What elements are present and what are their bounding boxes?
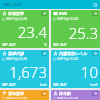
staticText: 基礎代謝 bbox=[8, 51, 41, 56]
staticText: 体脂肪率 bbox=[8, 11, 41, 16]
staticText: HBF-254T bbox=[2, 43, 44, 47]
staticText: HBF-254T bbox=[53, 83, 90, 87]
button[interactable]: Details bbox=[92, 11, 98, 16]
staticText: level bbox=[90, 82, 98, 87]
staticText: 06/01(金) 22:52 bbox=[57, 17, 79, 21]
button[interactable]: 体年齢 bbox=[51, 90, 100, 100]
button[interactable]: 体脂肪率 bbox=[0, 10, 49, 48]
staticText: 1,673 bbox=[9, 62, 47, 82]
button[interactable]: Sync bbox=[92, 2, 98, 8]
staticText: HBF-254T bbox=[3, 2, 22, 7]
staticText: 06/01(金) 22:52 bbox=[6, 17, 28, 21]
button[interactable]: BMI bbox=[51, 10, 100, 48]
button[interactable]: Details bbox=[41, 91, 47, 96]
staticText: BMI bbox=[59, 11, 92, 16]
button[interactable]: HBF-254T bbox=[0, 0, 100, 9]
staticText: HBF-254T bbox=[53, 43, 98, 47]
button[interactable]: Details bbox=[41, 11, 47, 16]
button[interactable]: Details bbox=[41, 51, 47, 56]
staticText: 06/01(金) 22:52 bbox=[6, 57, 28, 61]
staticText: 体年齢 bbox=[59, 91, 92, 96]
staticText: 06/01(金) 22:52 bbox=[57, 57, 79, 61]
staticText: 10 bbox=[80, 62, 98, 82]
button[interactable]: 骨格筋率 bbox=[0, 90, 49, 100]
staticText: HBF-254T bbox=[2, 83, 40, 87]
staticText: 骨格筋率 bbox=[8, 91, 41, 96]
button[interactable]: 基礎代謝 bbox=[0, 50, 49, 88]
staticText: 内臓脂肪レベル bbox=[59, 51, 92, 56]
staticText: % bbox=[44, 42, 47, 47]
button[interactable]: Details bbox=[92, 91, 98, 96]
button[interactable]: 内臓脂肪レベル bbox=[51, 50, 100, 88]
button[interactable]: Details bbox=[92, 51, 98, 56]
staticText: 06/01(金) 22:52 bbox=[6, 97, 28, 99]
staticText: 23.4 bbox=[17, 22, 47, 42]
staticText: 25.3 bbox=[68, 23, 98, 43]
staticText: kcal bbox=[40, 82, 47, 87]
staticText: 06/01(金) 22:52 bbox=[57, 97, 79, 99]
